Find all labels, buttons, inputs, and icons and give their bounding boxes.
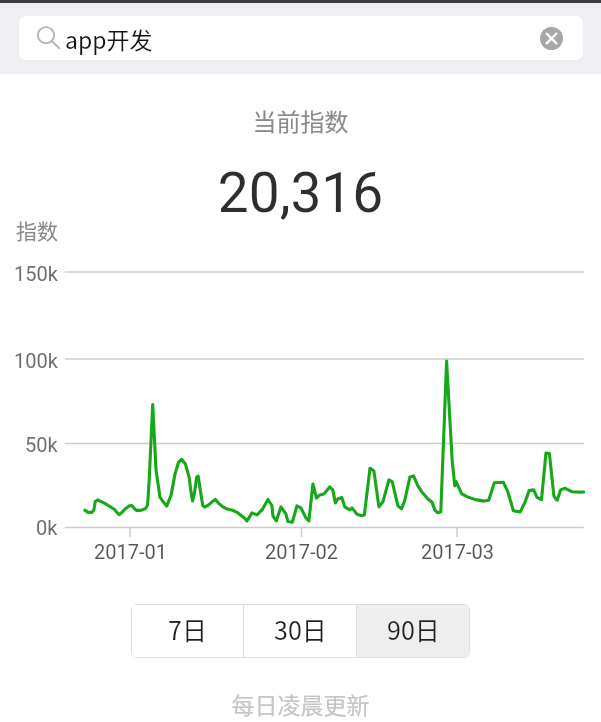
staticText: 7日 — [168, 611, 207, 647]
staticText: 150k — [14, 262, 58, 285]
button[interactable]: Clear search — [531, 18, 571, 58]
staticText: app开发 — [65, 22, 153, 55]
staticText: 当前指数 — [0, 103, 601, 138]
staticText: 指数 — [16, 215, 58, 245]
staticText: 30日 — [274, 611, 327, 647]
staticText: 20,316 — [0, 161, 601, 225]
staticText: 2017-03 — [421, 540, 494, 563]
staticText: 50k — [25, 433, 58, 456]
staticText: 100k — [14, 349, 58, 372]
button[interactable]: 90日 — [357, 605, 469, 657]
staticText: 每日凌晨更新 — [0, 687, 601, 720]
staticText: 2017-02 — [265, 540, 338, 563]
staticText: 2017-01 — [94, 540, 167, 563]
button[interactable]: 7日 — [132, 605, 243, 657]
staticText: 90日 — [387, 611, 440, 647]
button[interactable]: app开发 — [19, 16, 583, 60]
staticText: 0k — [36, 516, 58, 539]
button[interactable]: 30日 — [244, 605, 356, 657]
